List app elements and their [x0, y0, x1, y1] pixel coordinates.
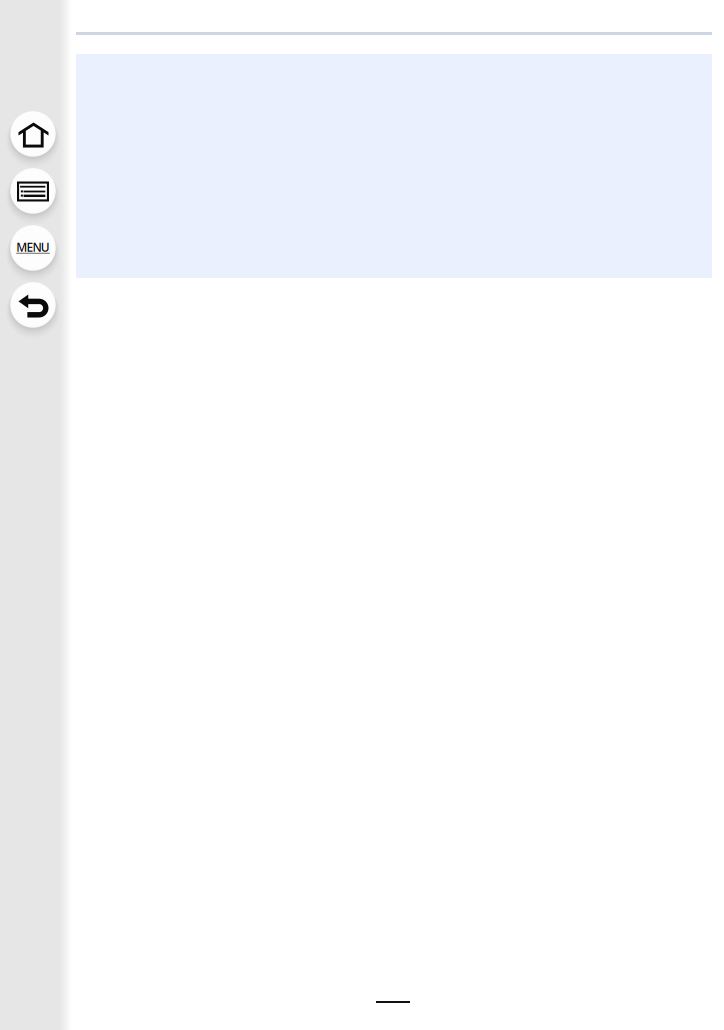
button[interactable]: Menu: [5, 220, 61, 276]
button[interactable]: Home: [5, 106, 61, 162]
staticText: MENU: [16, 239, 50, 255]
button[interactable]: Contents: [5, 163, 61, 219]
button[interactable]: Back: [5, 277, 61, 333]
